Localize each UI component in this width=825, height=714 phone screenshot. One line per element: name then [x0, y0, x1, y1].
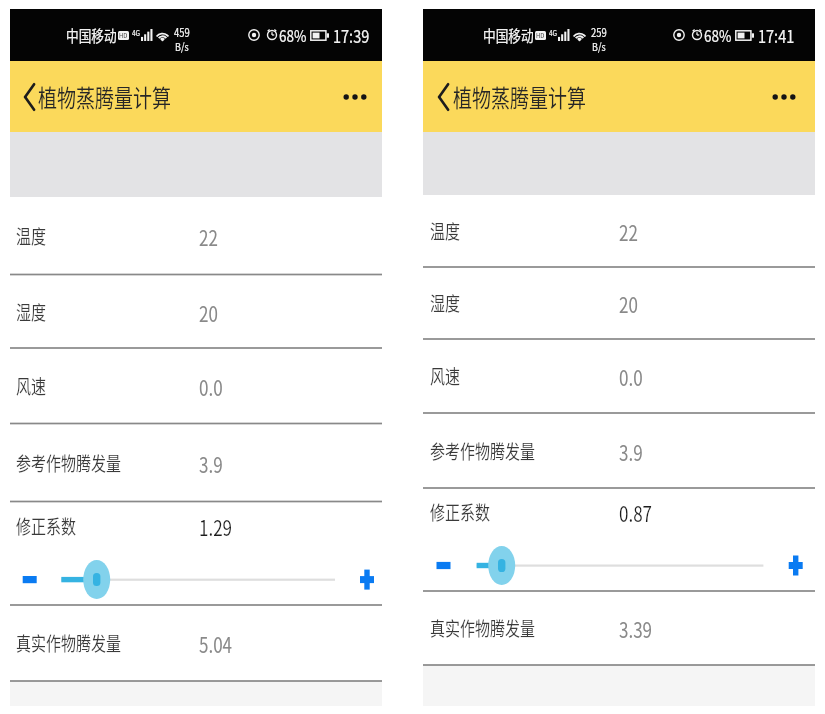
staticText: 259: [591, 23, 607, 41]
button[interactable]: 真实作物腾发量: [10, 605, 382, 681]
staticText: 真实作物腾发量: [16, 629, 122, 657]
staticText: 温度: [16, 222, 47, 250]
staticText: 4G: [549, 26, 558, 37]
button[interactable]: Decrease: [429, 549, 459, 583]
button[interactable]: 风速: [423, 339, 815, 413]
button[interactable]: Increase: [352, 563, 382, 597]
staticText: 1.29: [199, 511, 233, 542]
button[interactable]: 风速: [10, 348, 382, 424]
staticText: 68%: [704, 23, 732, 47]
staticText: 17:41: [758, 23, 795, 48]
staticText: 68%: [279, 23, 307, 47]
staticText: 中国移动: [66, 24, 117, 46]
button[interactable]: 湿度: [423, 267, 815, 339]
staticText: B/s: [592, 39, 606, 54]
button[interactable]: Correction factor slider: [55, 563, 341, 597]
staticText: HD: [536, 31, 545, 40]
staticText: 湿度: [430, 289, 461, 317]
staticText: 3.9: [619, 436, 643, 467]
staticText: 20: [619, 288, 638, 319]
staticText: 植物蒸腾量计算: [453, 79, 587, 114]
staticText: 修正系数: [16, 512, 77, 540]
staticText: 温度: [430, 217, 461, 245]
button[interactable]: 温度: [423, 195, 815, 267]
staticText: 0.0: [199, 371, 223, 402]
staticText: 中国移动: [483, 24, 534, 46]
staticText: 22: [619, 216, 638, 247]
button[interactable]: 参考作物腾发量: [10, 424, 382, 502]
button[interactable]: Correction factor slider: [471, 549, 770, 583]
button[interactable]: 湿度: [10, 275, 382, 349]
button[interactable]: 真实作物腾发量: [423, 591, 815, 665]
staticText: 0.87: [619, 497, 653, 528]
staticText: HD: [119, 31, 128, 40]
button[interactable]: Back: [427, 61, 459, 132]
button[interactable]: 参考作物腾发量: [423, 413, 815, 488]
staticText: 真实作物腾发量: [430, 614, 536, 642]
staticText: 3.39: [619, 613, 653, 644]
staticText: 修正系数: [430, 498, 491, 526]
staticText: 20: [199, 297, 218, 328]
staticText: 植物蒸腾量计算: [38, 79, 172, 114]
staticText: 5.04: [199, 628, 233, 659]
staticText: 459: [174, 23, 190, 41]
staticText: 3.9: [199, 448, 223, 479]
staticText: 17:39: [333, 23, 370, 48]
button[interactable]: Back: [13, 61, 45, 132]
button[interactable]: 温度: [10, 197, 382, 275]
staticText: B/s: [175, 39, 189, 54]
button[interactable]: Decrease: [15, 563, 45, 597]
button[interactable]: Increase: [781, 549, 811, 583]
staticText: 0.0: [619, 361, 643, 392]
button[interactable]: 修正系数: [423, 488, 815, 591]
staticText: 风速: [16, 372, 47, 400]
staticText: 参考作物腾发量: [16, 449, 122, 477]
staticText: 22: [199, 221, 218, 252]
button[interactable]: More options: [337, 61, 373, 132]
button[interactable]: 修正系数: [10, 502, 382, 606]
staticText: 4G: [132, 26, 141, 37]
staticText: 湿度: [16, 298, 47, 326]
staticText: 风速: [430, 362, 461, 390]
button[interactable]: More options: [766, 61, 802, 132]
staticText: 参考作物腾发量: [430, 437, 536, 465]
